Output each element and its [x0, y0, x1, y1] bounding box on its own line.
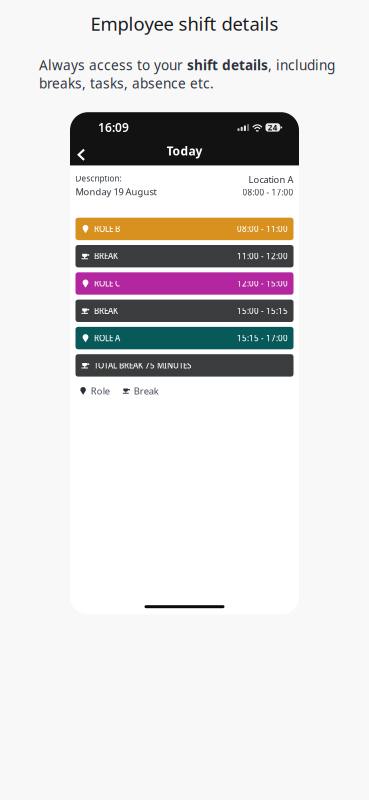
staticText: Location A [248, 173, 293, 186]
button[interactable]: Back [70, 139, 92, 159]
staticText: 16:09 [98, 119, 129, 135]
button[interactable]: ROLE C [75, 272, 293, 295]
staticText: 08:00 - 11:00 [237, 224, 288, 234]
staticText: TOTAL BREAK 75 MINUTES [94, 360, 191, 371]
staticText: 11:00 - 12:00 [237, 251, 288, 261]
staticText: ROLE B [94, 224, 120, 234]
staticText: Description: [75, 173, 121, 184]
staticText: ROLE C [94, 278, 120, 289]
staticText: 15:15 - 17:00 [237, 333, 288, 343]
staticText: BREAK [94, 305, 118, 316]
staticText: 24 [268, 122, 278, 133]
button[interactable]: BREAK [75, 300, 293, 322]
staticText: Employee shift details [90, 11, 278, 36]
staticText: Break [134, 385, 159, 397]
button[interactable]: ROLE B [75, 218, 293, 240]
button[interactable]: ROLE A [75, 327, 293, 349]
staticText: Today [166, 143, 202, 159]
button[interactable]: TOTAL BREAK 75 MINUTES [75, 354, 293, 377]
staticText: ROLE A [94, 333, 120, 343]
staticText: Always access to your shift details, inc… [39, 56, 335, 92]
staticText: Monday 19 August [75, 185, 156, 198]
staticText: Role [91, 385, 110, 397]
staticText: 15:00 - 15:15 [237, 305, 288, 316]
staticText: BREAK [94, 251, 118, 261]
button[interactable]: BREAK [75, 245, 293, 267]
staticText: 12:00 - 15:00 [237, 278, 288, 289]
staticText: 08:00 - 17:00 [242, 187, 293, 198]
